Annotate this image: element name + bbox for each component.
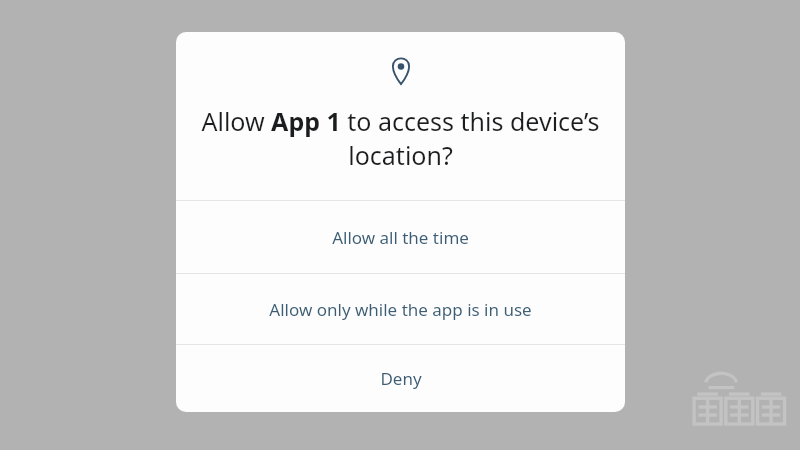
other: Location [390,57,412,85]
staticText: Deny [380,367,422,390]
button[interactable]: Deny [176,345,625,412]
button[interactable]: Allow all the time [176,201,625,273]
button[interactable]: Allow only while the app is in use [176,274,625,344]
staticText: Allow all the time [332,226,469,249]
staticText: Allow only while the app is in use [269,298,532,321]
staticText: Allow App 1 to access this device’s loca… [200,104,601,173]
